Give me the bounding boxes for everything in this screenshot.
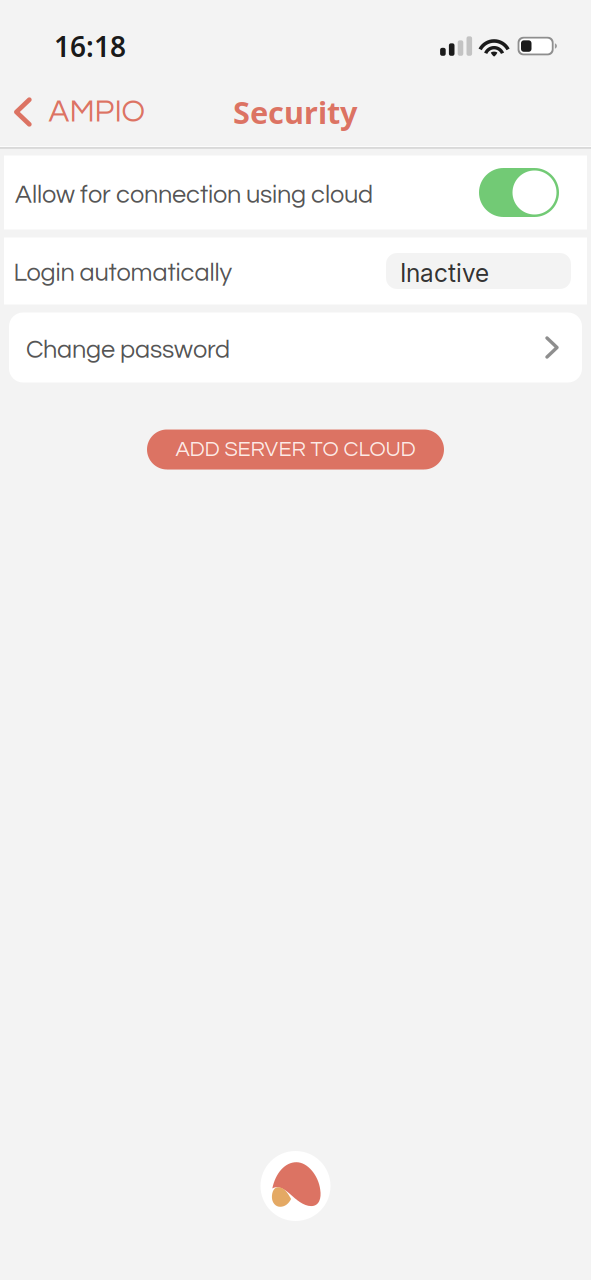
staticText: Security (233, 91, 358, 133)
staticText: Login automatically (13, 260, 232, 286)
staticText: 16:18 (54, 27, 126, 65)
button[interactable]: AMPIO (0, 86, 157, 138)
button[interactable]: Change password (9, 312, 582, 382)
button[interactable]: Inactive (386, 253, 571, 289)
staticText: Inactive (400, 258, 489, 288)
staticText: ADD SERVER TO CLOUD (175, 438, 415, 461)
staticText: Change password (26, 337, 230, 363)
button[interactable]: Allow for connection using cloud (479, 168, 559, 217)
staticText: Allow for connection using cloud (15, 182, 373, 208)
button[interactable]: ADD SERVER TO CLOUD (147, 429, 444, 469)
staticText: AMPIO (48, 96, 145, 128)
